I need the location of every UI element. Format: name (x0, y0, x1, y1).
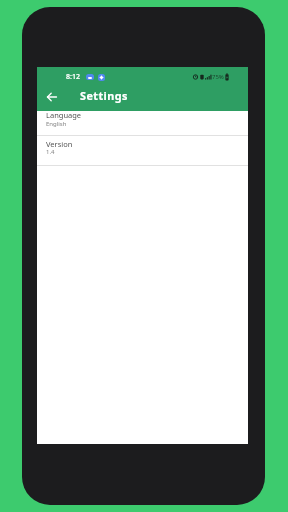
staticText: 1.4 (46, 148, 55, 156)
staticText: English (46, 120, 67, 128)
staticText: Version (46, 139, 73, 149)
staticText: Language (46, 110, 82, 120)
staticText: 8:12 (66, 72, 80, 82)
staticText: Settings (80, 88, 128, 103)
button[interactable] (37, 136, 248, 165)
button[interactable] (37, 111, 248, 135)
button[interactable] (46, 91, 58, 103)
staticText: 75% (212, 73, 224, 81)
